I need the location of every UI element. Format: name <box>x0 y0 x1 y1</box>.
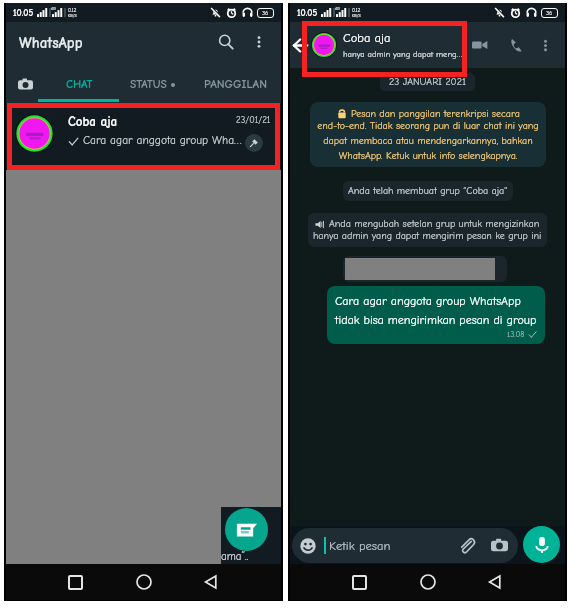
button[interactable]: Back <box>198 569 224 595</box>
staticText: 13.08 <box>507 330 525 339</box>
staticText: PANGGILAN <box>204 77 268 91</box>
staticText: 36 <box>262 10 269 17</box>
button[interactable]: Ketik pesan <box>292 528 518 563</box>
staticText: hanya admin yang dapat meng… <box>343 49 463 59</box>
button[interactable]: New chat <box>225 508 268 551</box>
button[interactable]: Recents <box>62 569 88 595</box>
staticText: STATUS <box>130 78 167 91</box>
staticText: Pesan dan panggilan terenkripsi secara <box>351 108 520 120</box>
staticText: 4G <box>51 6 56 11</box>
staticText: 4G <box>335 6 340 11</box>
staticText: Ketik pesan <box>329 539 391 553</box>
staticText: KB/S <box>352 13 361 18</box>
staticText: Anda telah membuat grup “Coba aja” <box>348 185 508 197</box>
staticText: end-to-end. Tidak seorang pun di luar ch… <box>317 120 539 161</box>
staticText: 23 JANUARI 2021 <box>389 76 466 88</box>
staticText: Cara agar anggota group Wha… <box>83 134 242 147</box>
button[interactable]: Voice message <box>523 526 560 563</box>
button[interactable]: More options <box>535 35 555 55</box>
button[interactable]: Search <box>214 30 238 54</box>
button[interactable]: Video call <box>469 34 491 56</box>
staticText: hanya admin yang dapat mengirim pesan ke… <box>313 230 542 242</box>
button[interactable]: Voice call <box>505 34 527 56</box>
staticText: Coba aja <box>68 114 118 129</box>
staticText: 36 <box>546 10 553 17</box>
button[interactable]: CHAT <box>44 67 114 101</box>
staticText: CHAT <box>66 78 93 91</box>
button[interactable]: Recents <box>346 569 372 595</box>
button[interactable]: Camera <box>6 67 44 101</box>
staticText: ama”.. <box>221 550 249 563</box>
staticText: Cara agar anggota group WhatsApp tidak b… <box>335 294 537 327</box>
staticText: Anda mengubah setelan grup untuk mengizi… <box>329 218 540 230</box>
staticText: 0.12 <box>68 7 77 13</box>
staticText: Coba aja <box>343 31 391 45</box>
button[interactable]: STATUS <box>114 67 190 101</box>
staticText: WhatsApp <box>19 34 83 51</box>
button[interactable]: Back <box>291 36 309 54</box>
button[interactable]: Back <box>482 569 508 595</box>
staticText: 10.05 <box>297 8 318 18</box>
staticText: KB/S <box>68 13 77 18</box>
button[interactable]: More options <box>247 30 271 54</box>
button[interactable]: Home <box>131 569 157 595</box>
button[interactable]: PANGGILAN <box>190 67 281 101</box>
staticText: 0.12 <box>352 7 361 13</box>
button[interactable]: Home <box>415 569 441 595</box>
staticText: 10.05 <box>13 8 34 18</box>
staticText: 23/01/21 <box>236 115 271 125</box>
